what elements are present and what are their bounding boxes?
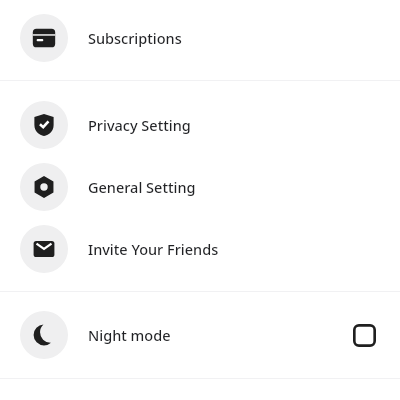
button[interactable]: Night mode [0,311,400,359]
staticText: Night mode [88,325,171,345]
staticText: Invite Your Friends [88,239,219,259]
other: Privacy Setting [31,112,57,138]
button[interactable]: General Setting [0,163,400,211]
other: Invite Your Friends [31,236,57,262]
other: Subscriptions [31,25,57,51]
button[interactable]: Night mode toggle [349,320,379,350]
staticText: General Setting [88,177,196,197]
staticText: Privacy Setting [88,115,191,135]
button[interactable]: Invite Your Friends [0,225,400,273]
other: General Setting [31,174,57,200]
button[interactable]: Privacy Setting [0,101,400,149]
staticText: Subscriptions [88,28,182,48]
other: Night mode [31,322,57,348]
button[interactable]: Subscriptions [0,14,400,62]
